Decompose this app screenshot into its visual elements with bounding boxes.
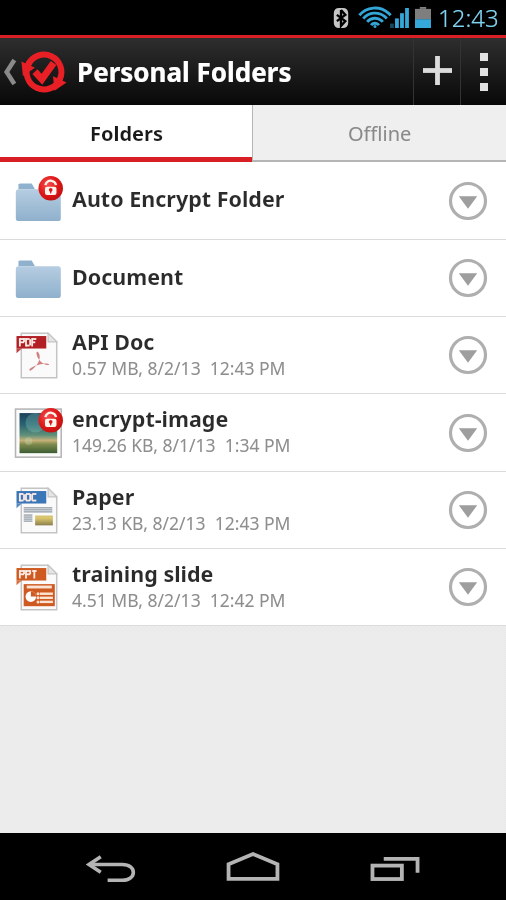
button[interactable]: Auto Encrypt Folder: [0, 162, 506, 239]
button[interactable]: More actions: [429, 472, 506, 548]
button[interactable]: Offline: [253, 105, 506, 162]
staticText: Personal Folders: [77, 54, 292, 89]
button[interactable]: Home: [205, 833, 301, 900]
button[interactable]: API Doc: [0, 317, 506, 393]
staticText: encrypt-image: [72, 404, 229, 433]
button[interactable]: Recents: [347, 833, 443, 900]
staticText: Paper: [72, 482, 135, 511]
button[interactable]: More actions: [429, 162, 506, 239]
button[interactable]: Paper: [0, 472, 506, 548]
staticText: API Doc: [72, 327, 155, 356]
button[interactable]: Add: [414, 38, 460, 105]
staticText: 12:43: [438, 1, 499, 34]
button[interactable]: More actions: [429, 549, 506, 625]
staticText: Offline: [348, 120, 412, 147]
button[interactable]: Up, Personal Folders: [0, 38, 413, 105]
button[interactable]: More options: [461, 38, 506, 105]
staticText: 23.13 KB, 8/2/13 12:43 PM: [72, 511, 291, 535]
button[interactable]: More actions: [429, 317, 506, 393]
staticText: Folders: [90, 120, 163, 147]
staticText: Auto Encrypt Folder: [72, 184, 285, 213]
button[interactable]: Folders: [0, 105, 252, 162]
button[interactable]: encrypt-image: [0, 394, 506, 471]
button[interactable]: Back: [64, 833, 160, 900]
button[interactable]: More actions: [429, 394, 506, 471]
button[interactable]: More actions: [429, 240, 506, 316]
button[interactable]: training slide: [0, 549, 506, 625]
staticText: 0.57 MB, 8/2/13 12:43 PM: [72, 356, 286, 380]
staticText: Document: [72, 262, 184, 291]
staticText: 149.26 KB, 8/1/13 1:34 PM: [72, 433, 291, 457]
staticText: 4.51 MB, 8/2/13 12:42 PM: [72, 588, 286, 612]
staticText: training slide: [72, 559, 214, 588]
button[interactable]: Document: [0, 240, 506, 316]
